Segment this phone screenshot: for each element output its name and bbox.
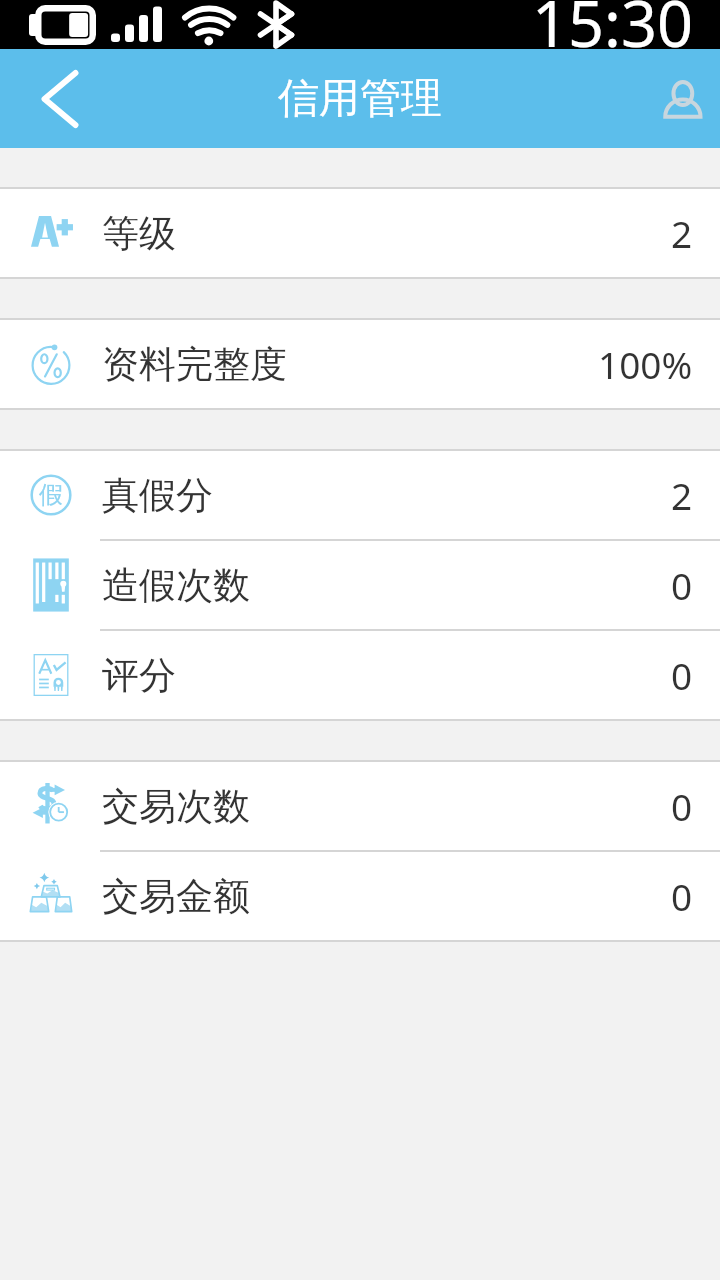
staticText: 信用管理 — [278, 73, 442, 125]
staticText: 资料完整度 — [102, 341, 287, 388]
staticText: 造假次数 — [102, 562, 250, 609]
staticText: 15:30 — [532, 0, 694, 66]
staticText: 交易次数 — [102, 783, 250, 830]
button[interactable]: 造假次数 — [0, 541, 720, 629]
button[interactable]: 评分 — [0, 631, 720, 719]
button[interactable]: Profile — [620, 49, 720, 148]
button[interactable]: 交易次数 — [0, 762, 720, 850]
button[interactable]: 资料完整度 — [0, 320, 720, 408]
staticText: 0 — [671, 781, 693, 831]
staticText: 2 — [671, 470, 693, 520]
staticText: 0 — [671, 560, 693, 610]
button[interactable]: 交易金额 — [0, 852, 720, 940]
staticText: 2 — [671, 208, 693, 258]
staticText: 假 — [39, 480, 63, 510]
staticText: 评分 — [102, 652, 176, 699]
staticText: 真假分 — [102, 472, 213, 519]
staticText: 0 — [671, 650, 693, 700]
staticText: 0 — [671, 871, 693, 921]
button[interactable]: Back — [0, 49, 110, 148]
button[interactable]: 假 — [0, 451, 720, 539]
staticText: 等级 — [102, 210, 176, 257]
staticText: 100% — [598, 339, 693, 389]
staticText: 交易金额 — [102, 873, 250, 920]
button[interactable]: 等级 — [0, 189, 720, 277]
